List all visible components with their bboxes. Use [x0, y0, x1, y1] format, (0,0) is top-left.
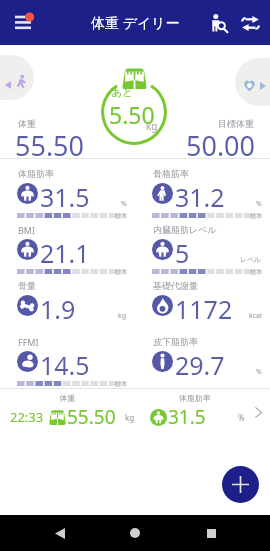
button[interactable]: Menu	[10, 9, 38, 37]
staticText: BMI	[18, 224, 36, 236]
staticText: 31.5	[40, 180, 90, 214]
button[interactable]: Sync	[236, 9, 264, 37]
staticText: 皮下脂肪率	[153, 336, 198, 347]
staticText: 29.7	[175, 348, 225, 382]
staticText: 31.2	[175, 180, 225, 214]
staticText: 21.1	[40, 236, 90, 270]
staticText: %	[256, 367, 262, 377]
button[interactable]: Next page	[235, 58, 270, 106]
staticText: %	[238, 412, 245, 423]
staticText: 標準	[115, 380, 127, 388]
button[interactable]: Search person	[205, 9, 233, 37]
staticText: %	[256, 199, 262, 209]
staticText: %	[121, 199, 127, 209]
staticText: FFMI	[18, 336, 39, 348]
staticText: 50.00	[186, 127, 256, 164]
button[interactable]: Add record	[222, 466, 259, 503]
staticText: 標準	[115, 212, 127, 220]
staticText: 1.9	[40, 292, 76, 326]
staticText: 標準	[250, 212, 262, 220]
staticText: 1172	[175, 292, 233, 326]
staticText: 標準	[115, 268, 127, 276]
button[interactable]: 体重	[0, 389, 270, 432]
staticText: 基礎代謝量	[153, 280, 198, 291]
staticText: 55.50	[15, 127, 85, 164]
button[interactable]: BMI	[0, 215, 135, 271]
staticText: kg	[146, 119, 158, 133]
staticText: 標準	[250, 268, 262, 276]
staticText: レベル	[240, 255, 262, 264]
staticText: 55.50	[67, 404, 116, 430]
staticText: 体重	[18, 118, 36, 129]
staticText: 体重 デイリー	[91, 13, 180, 32]
staticText: 内臓脂肪レベル	[153, 224, 217, 235]
button[interactable]: Home	[119, 517, 151, 549]
staticText: 22:33	[10, 408, 44, 426]
staticText: 5	[175, 236, 190, 270]
staticText: 体脂肪率	[18, 168, 54, 179]
staticText: 体重	[0, 393, 135, 403]
button[interactable]: FFMI	[0, 327, 135, 383]
button[interactable]: Previous day	[0, 55, 34, 100]
button[interactable]: 体脂肪率	[0, 159, 135, 215]
button[interactable]: 骨量	[0, 271, 135, 327]
button[interactable]: 内臓脂肪レベル	[135, 215, 270, 271]
staticText: 骨量	[18, 280, 36, 291]
staticText: kg	[125, 412, 135, 423]
staticText: 14.5	[40, 348, 90, 382]
staticText: kcal	[249, 311, 262, 321]
button[interactable]: Remaining weight	[101, 79, 167, 145]
staticText: kg	[118, 311, 127, 321]
staticText: 体脂肪率	[135, 393, 255, 403]
staticText: 目標体重	[218, 118, 254, 129]
staticText: 骨格筋率	[153, 168, 189, 179]
button[interactable]: 皮下脂肪率	[135, 327, 270, 383]
staticText: 5.50	[109, 99, 155, 130]
staticText: あと	[112, 86, 133, 99]
button[interactable]: 基礎代謝量	[135, 271, 270, 327]
button[interactable]: Recents	[195, 517, 227, 549]
button[interactable]: Back	[44, 517, 76, 549]
button[interactable]: 骨格筋率	[135, 159, 270, 215]
staticText: 31.5	[168, 404, 206, 430]
